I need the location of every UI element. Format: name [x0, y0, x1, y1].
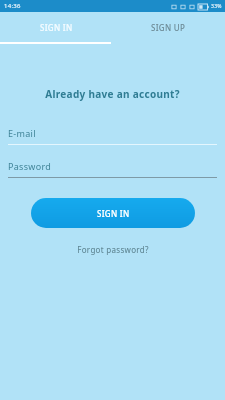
- button[interactable]: SIGN IN: [31, 198, 195, 228]
- staticText: SIGN IN: [40, 22, 73, 33]
- staticText: E-mail: [8, 127, 36, 139]
- staticText: Password: [8, 160, 52, 172]
- staticText: Forgot password?: [77, 244, 149, 255]
- staticText: 33%: [211, 3, 222, 10]
- staticText: SIGN UP: [151, 22, 186, 33]
- button[interactable]: SIGN UP: [112, 12, 225, 43]
- staticText: Already have an account?: [0, 87, 225, 101]
- button[interactable]: Forgot password?: [0, 244, 225, 255]
- staticText: SIGN IN: [97, 208, 130, 219]
- button[interactable]: SIGN IN: [0, 12, 112, 43]
- staticText: 14:36: [4, 2, 21, 10]
